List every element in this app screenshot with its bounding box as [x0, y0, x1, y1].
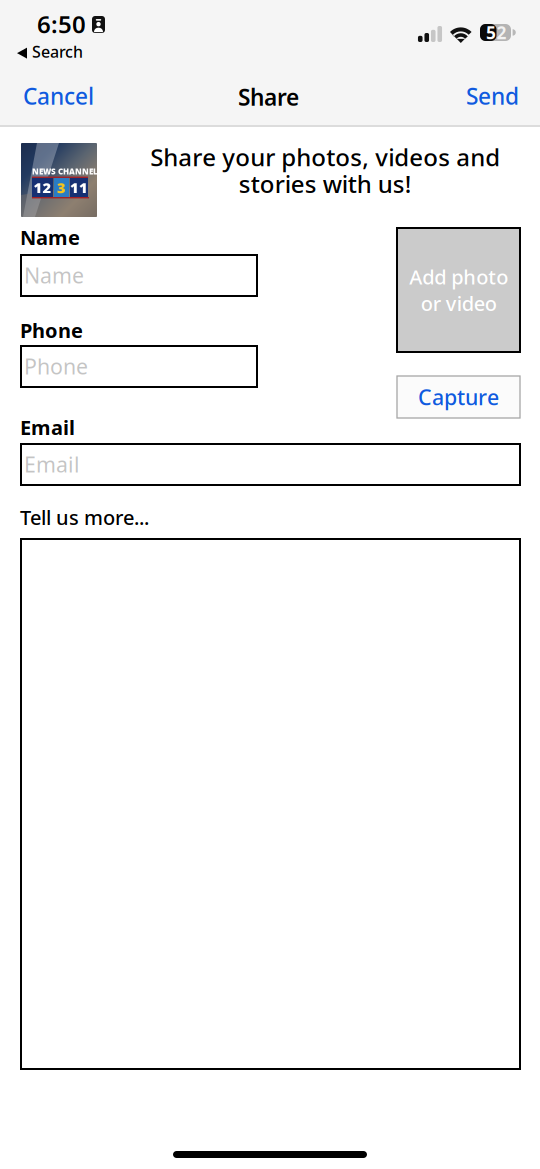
- staticText: 2: [496, 21, 506, 44]
- staticText: 3: [57, 178, 66, 197]
- staticText: Search: [32, 41, 83, 62]
- staticText: Capture: [418, 383, 499, 411]
- staticText: Name: [20, 224, 80, 251]
- staticText: Phone: [24, 352, 88, 380]
- button[interactable]: Email: [21, 444, 520, 485]
- button[interactable]: Phone: [21, 346, 257, 387]
- staticText: Send: [466, 81, 519, 111]
- button[interactable]: Capture: [397, 376, 520, 418]
- button[interactable]: Search: [17, 39, 83, 64]
- staticText: Add photo or video: [409, 263, 508, 316]
- staticText: Name: [24, 261, 84, 289]
- staticText: Phone: [20, 317, 83, 344]
- button[interactable]: Add photo or video: [397, 228, 520, 352]
- staticText: Email: [24, 450, 80, 478]
- staticText: Cancel: [23, 81, 94, 111]
- staticText: 6:50: [37, 8, 86, 40]
- staticText: Share your photos, videos and stories wi…: [150, 141, 500, 200]
- staticText: 11: [70, 178, 88, 197]
- button[interactable]: Send: [453, 71, 533, 121]
- staticText: 5: [486, 21, 496, 44]
- button[interactable]: Cancel: [10, 71, 108, 121]
- staticText: Share: [238, 82, 299, 112]
- staticText: 12: [33, 178, 51, 197]
- button[interactable]: Name: [21, 255, 257, 296]
- staticText: NEWS CHANNEL: [32, 166, 98, 177]
- button[interactable]: [21, 539, 520, 1069]
- staticText: Email: [20, 414, 75, 441]
- staticText: Tell us more...: [20, 504, 149, 531]
